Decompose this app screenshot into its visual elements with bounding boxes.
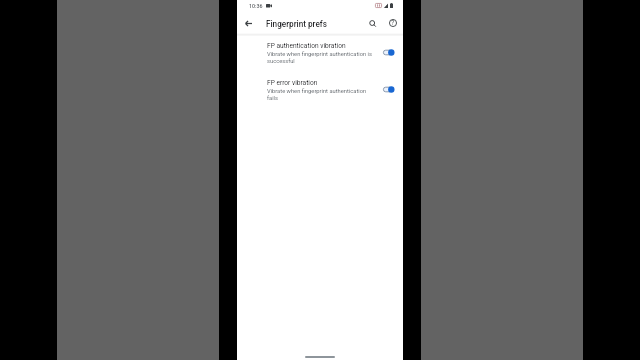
- button[interactable]: Help: [384, 14, 402, 32]
- staticText: FP error vibration: [267, 79, 318, 87]
- staticText: ?: [391, 19, 395, 27]
- staticText: Fingerprint prefs: [266, 19, 327, 29]
- button[interactable]: FP error vibration: [237, 77, 403, 111]
- button[interactable]: Search: [364, 15, 382, 33]
- button[interactable]: Toggle FP error vibration: [379, 82, 398, 96]
- staticText: 10:36: [249, 3, 263, 9]
- staticText: Vibrate when fingerprint authentication …: [267, 88, 373, 102]
- button[interactable]: FP authentication vibration: [237, 40, 403, 74]
- staticText: Vibrate when fingerprint authentication …: [267, 51, 373, 65]
- button[interactable]: Toggle FP authentication vibration: [379, 45, 398, 59]
- button[interactable]: Navigate up: [238, 13, 258, 33]
- staticText: FP authentication vibration: [267, 42, 346, 50]
